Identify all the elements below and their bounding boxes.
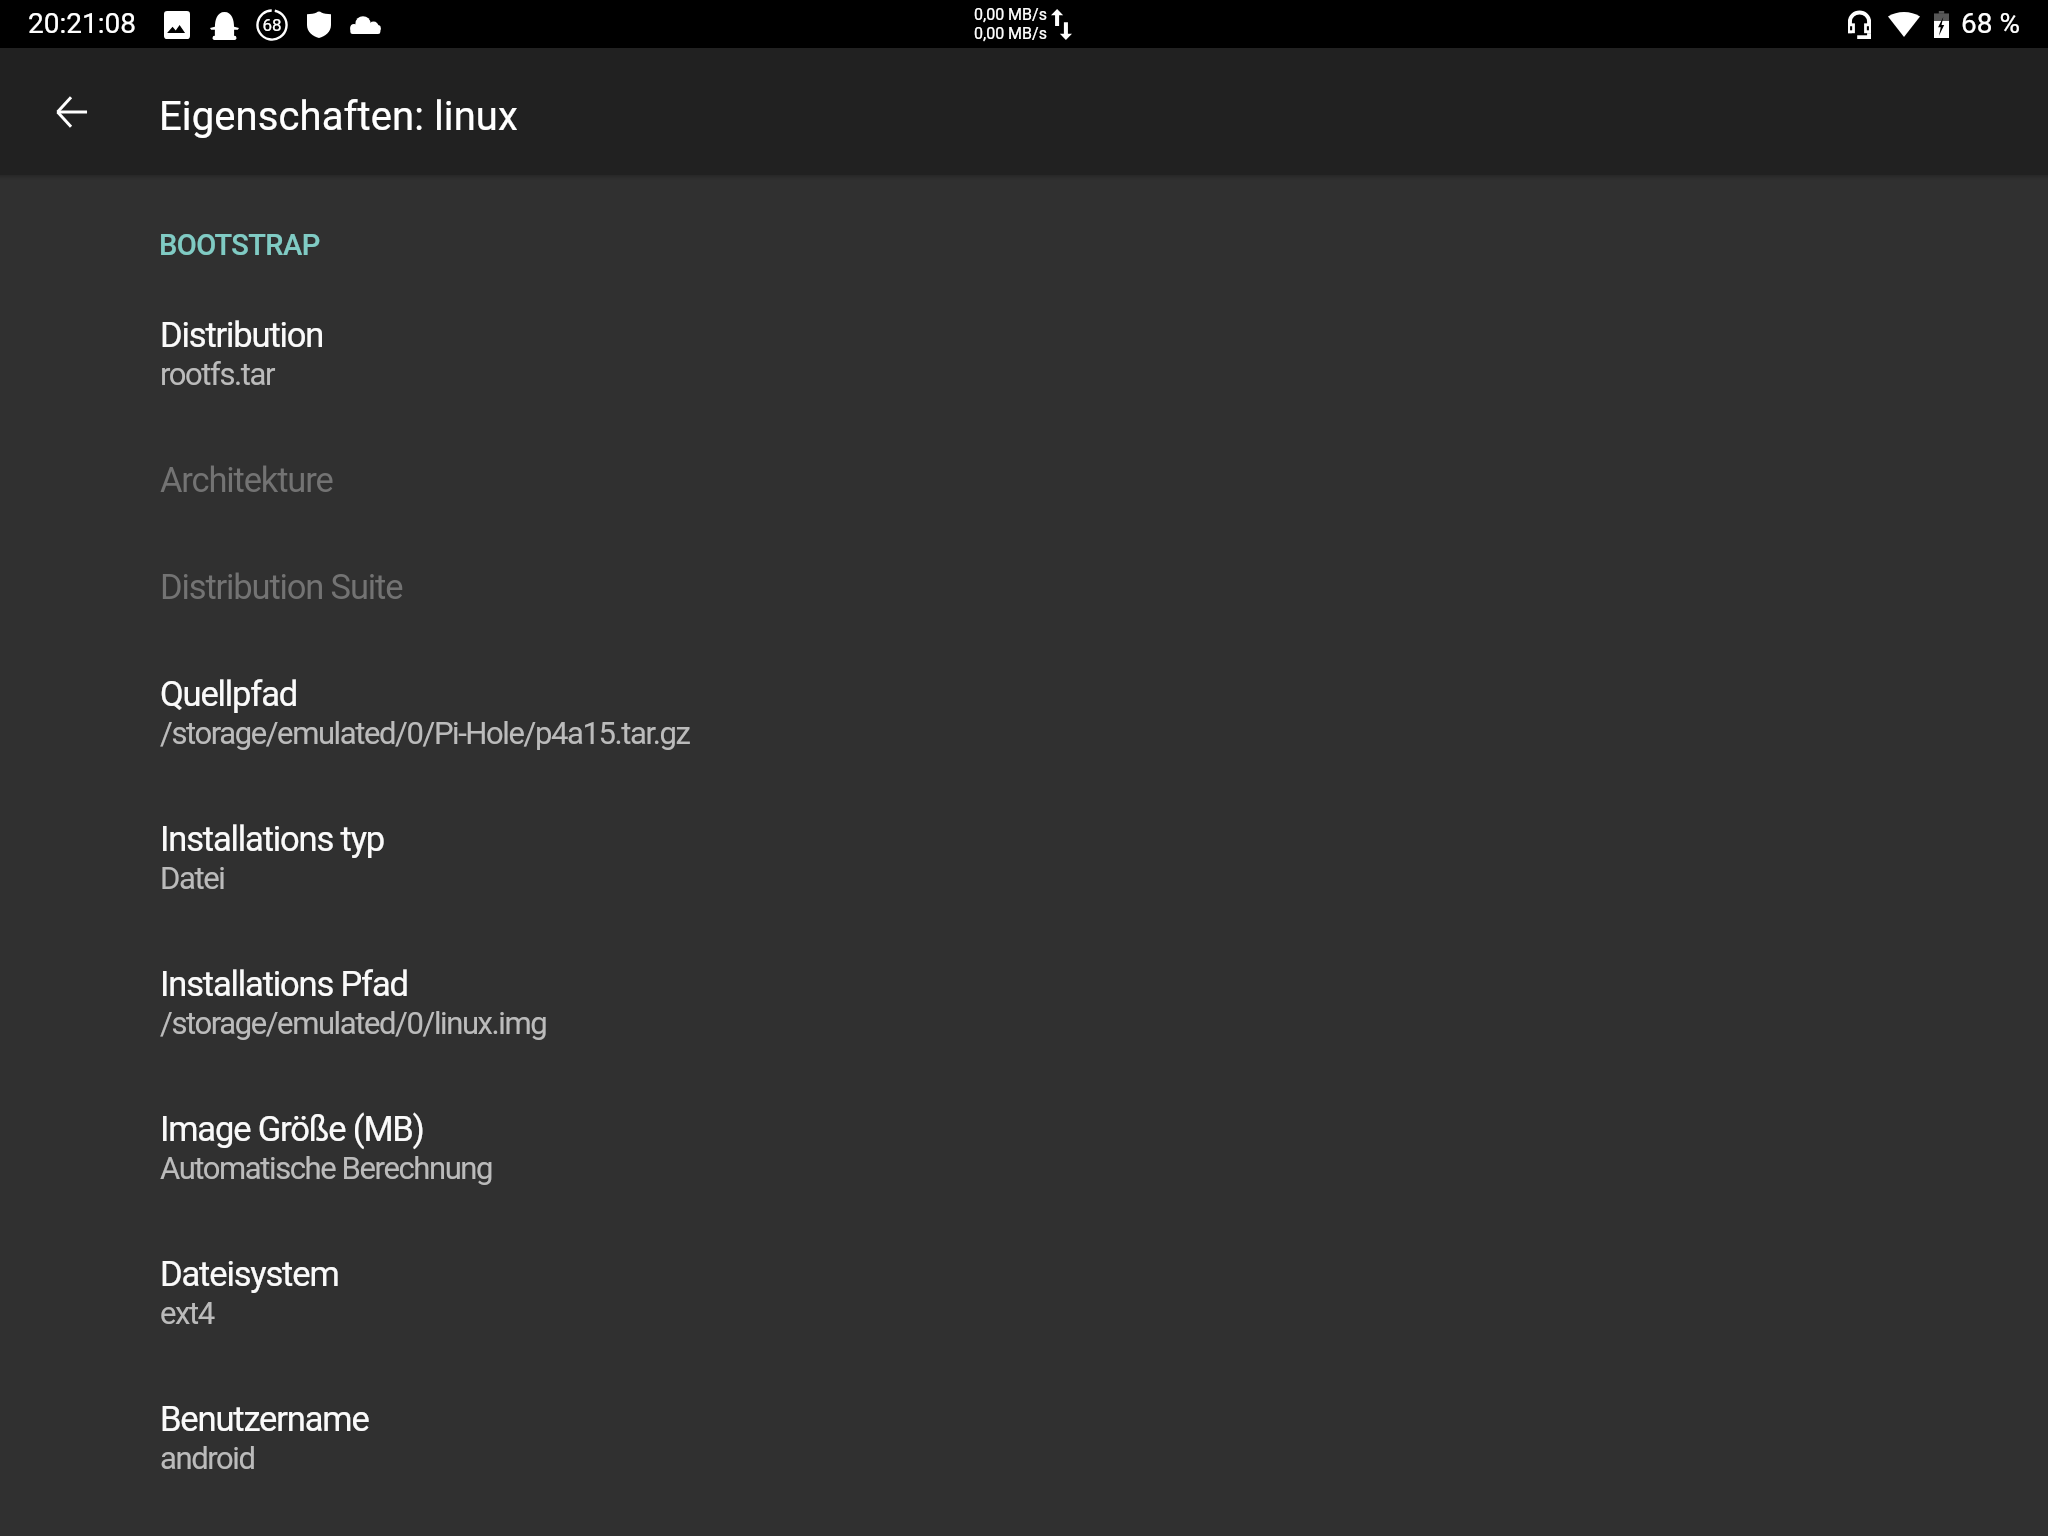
staticText: Installations Pfad bbox=[160, 964, 408, 1004]
staticText: Installations typ bbox=[160, 819, 385, 859]
staticText: android bbox=[160, 1440, 255, 1476]
staticText: 0,00 MB/s bbox=[974, 5, 1047, 24]
button[interactable]: Installations typ bbox=[0, 819, 2048, 964]
staticText: /storage/emulated/0/Pi-Hole/p4a15.tar.gz bbox=[160, 715, 690, 751]
staticText: Eigenschaften: linux bbox=[159, 93, 518, 140]
staticText: Quellpfad bbox=[160, 674, 298, 714]
button[interactable]: Back bbox=[24, 64, 120, 160]
staticText: 0,00 MB/s bbox=[974, 24, 1047, 43]
staticText: ext4 bbox=[160, 1295, 214, 1331]
button[interactable]: Benutzername bbox=[0, 1399, 2048, 1536]
button[interactable]: Distribution Suite bbox=[0, 567, 2048, 674]
staticText: 20:21:08 bbox=[28, 7, 136, 40]
staticText: Image Größe (MB) bbox=[160, 1109, 424, 1149]
staticText: Distribution Suite bbox=[160, 567, 403, 607]
staticText: Benutzername bbox=[160, 1399, 369, 1439]
staticText: BOOTSTRAP bbox=[159, 228, 320, 262]
staticText: 68 % bbox=[1961, 7, 2020, 40]
staticText: Distribution bbox=[160, 315, 324, 355]
button[interactable]: Distribution bbox=[0, 315, 2048, 460]
staticText: Automatische Berechnung bbox=[160, 1150, 493, 1186]
staticText: /storage/emulated/0/linux.img bbox=[160, 1005, 547, 1041]
staticText: Datei bbox=[160, 860, 225, 896]
button[interactable]: Dateisystem bbox=[0, 1254, 2048, 1399]
staticText: Architekture bbox=[160, 460, 333, 500]
button[interactable]: Architekture bbox=[0, 460, 2048, 567]
staticText: 68 bbox=[262, 15, 282, 35]
button[interactable]: Quellpfad bbox=[0, 674, 2048, 819]
button[interactable]: Image Größe (MB) bbox=[0, 1109, 2048, 1254]
staticText: rootfs.tar bbox=[160, 356, 275, 392]
button[interactable]: Installations Pfad bbox=[0, 964, 2048, 1109]
staticText: Dateisystem bbox=[160, 1254, 339, 1294]
